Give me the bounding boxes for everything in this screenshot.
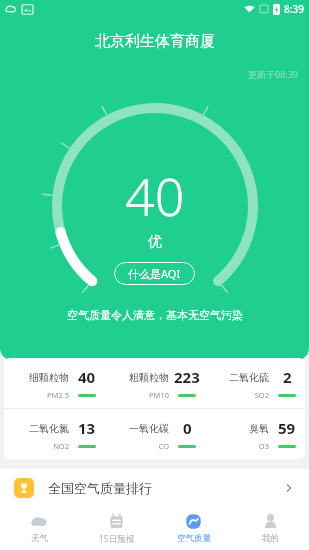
button[interactable]: 天气: [0, 507, 78, 550]
staticText: 8:39: [284, 2, 304, 16]
staticText: 15日预报: [99, 533, 135, 545]
button[interactable]: 空气质量: [155, 507, 232, 550]
staticText: 二氧化氮: [8, 422, 69, 435]
staticText: 59: [278, 418, 296, 438]
staticText: 2: [283, 367, 292, 387]
staticText: 粗颗粒物: [109, 371, 169, 384]
staticText: 二氧化硫: [209, 371, 269, 384]
staticText: 北京利生体育商厦: [95, 32, 215, 51]
staticText: 我的: [262, 533, 279, 544]
staticText: 细颗粒物: [8, 371, 69, 384]
staticText: 0: [183, 418, 192, 438]
staticText: 223: [174, 367, 200, 387]
button[interactable]: 15日预报: [78, 507, 155, 550]
staticText: 40: [78, 367, 96, 387]
staticText: 天气: [31, 533, 48, 544]
staticText: 一氧化碳: [109, 422, 169, 435]
staticText: 空气质量令人满意，基本无空气污染: [67, 308, 243, 322]
staticText: SO2: [209, 390, 269, 400]
staticText: 13: [78, 418, 96, 438]
staticText: NO2: [8, 441, 69, 451]
staticText: 全国空气质量排行: [48, 480, 283, 496]
button[interactable]: 我的: [232, 507, 309, 550]
button[interactable]: 全国空气质量排行: [0, 469, 309, 507]
staticText: CO: [109, 441, 169, 451]
staticText: 什么是AQI: [128, 266, 181, 281]
button[interactable]: 什么是AQI: [114, 262, 195, 285]
staticText: 更新于08:39: [248, 68, 299, 80]
staticText: 空气质量: [177, 533, 211, 544]
staticText: 臭氧: [209, 422, 269, 435]
staticText: 优: [148, 233, 162, 251]
staticText: PM10: [109, 390, 169, 400]
staticText: O3: [209, 441, 269, 451]
staticText: 40: [125, 160, 185, 231]
staticText: PM2.5: [8, 390, 69, 400]
